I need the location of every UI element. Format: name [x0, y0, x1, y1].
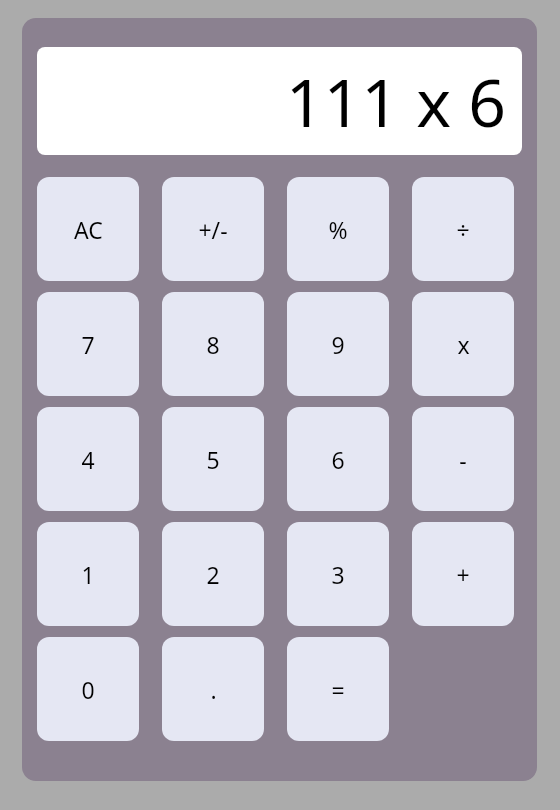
staticText: =	[331, 674, 345, 705]
button[interactable]: 4	[37, 407, 139, 511]
button[interactable]: 0	[37, 637, 139, 741]
button[interactable]: .	[162, 637, 264, 741]
staticText: 4	[81, 444, 95, 475]
staticText: +/-	[198, 214, 228, 245]
button[interactable]: -	[412, 407, 514, 511]
button[interactable]: 111 x 6	[37, 47, 522, 155]
button[interactable]: =	[287, 637, 389, 741]
button[interactable]: 8	[162, 292, 264, 396]
button[interactable]: 5	[162, 407, 264, 511]
button[interactable]: 6	[287, 407, 389, 511]
staticText: 111 x 6	[285, 56, 506, 146]
staticText: 5	[206, 444, 220, 475]
staticText: ÷	[456, 214, 470, 245]
button[interactable]: %	[287, 177, 389, 281]
staticText: x	[457, 329, 470, 360]
staticText: %	[328, 214, 348, 245]
button[interactable]: AC	[37, 177, 139, 281]
button[interactable]: 1	[37, 522, 139, 626]
staticText: 0	[81, 674, 95, 705]
staticText: 7	[81, 329, 95, 360]
button[interactable]: 9	[287, 292, 389, 396]
button[interactable]: 2	[162, 522, 264, 626]
staticText: 1	[81, 559, 95, 590]
staticText: 8	[206, 329, 220, 360]
button[interactable]: +/-	[162, 177, 264, 281]
staticText: .	[210, 674, 217, 705]
button[interactable]: x	[412, 292, 514, 396]
button[interactable]: 7	[37, 292, 139, 396]
staticText: 9	[331, 329, 345, 360]
staticText: AC	[74, 214, 103, 245]
staticText: -	[459, 444, 467, 475]
button[interactable]: 3	[287, 522, 389, 626]
staticText: +	[456, 559, 470, 590]
button[interactable]: +	[412, 522, 514, 626]
staticText: 3	[331, 559, 345, 590]
button[interactable]: ÷	[412, 177, 514, 281]
staticText: 2	[206, 559, 220, 590]
staticText: 6	[331, 444, 345, 475]
